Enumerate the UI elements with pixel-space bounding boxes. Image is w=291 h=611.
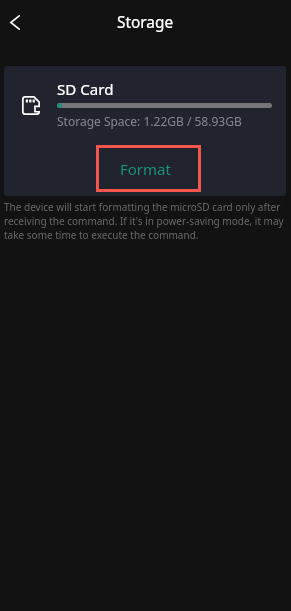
button[interactable]: Back bbox=[0, 0, 30, 44]
staticText: SD Card bbox=[57, 79, 114, 100]
staticText: Format bbox=[120, 159, 171, 179]
staticText: Storage Space: 1.22GB / 58.93GB bbox=[57, 113, 242, 129]
other: microSD card bbox=[22, 96, 40, 115]
staticText: The device will start formatting the mic… bbox=[4, 200, 287, 242]
button[interactable]: Format bbox=[96, 145, 201, 192]
staticText: Storage bbox=[117, 12, 174, 33]
